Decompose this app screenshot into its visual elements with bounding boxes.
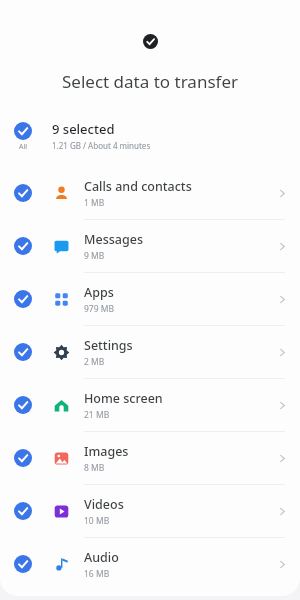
staticText: Audio [84, 549, 119, 566]
staticText: Images [84, 443, 129, 460]
button[interactable]: Settings [0, 326, 300, 378]
staticText: 8 MB [84, 462, 105, 474]
staticText: Select data to transfer [0, 70, 300, 93]
staticText: Settings [84, 337, 133, 354]
staticText: Messages [84, 231, 143, 248]
button[interactable]: Videos [0, 485, 300, 537]
button[interactable]: Apps [0, 273, 300, 325]
staticText: Videos [84, 496, 124, 513]
staticText: 21 MB [84, 409, 110, 421]
button[interactable]: All [0, 119, 300, 161]
staticText: 16 MB [84, 568, 110, 580]
staticText: 979 MB [84, 303, 115, 315]
staticText: Home screen [84, 390, 163, 407]
button[interactable]: Images [0, 432, 300, 484]
button[interactable]: Home screen [0, 379, 300, 431]
button[interactable]: Audio [0, 538, 300, 590]
staticText: Apps [84, 284, 114, 301]
staticText: 10 MB [84, 515, 110, 527]
staticText: 2 MB [84, 356, 105, 368]
staticText: 1.21 GB / About 4 minutes [52, 140, 151, 151]
button[interactable]: Calls and contacts [0, 167, 300, 219]
button[interactable]: Messages [0, 220, 300, 272]
staticText: 9 selected [52, 120, 115, 138]
staticText: 1 MB [84, 197, 105, 209]
staticText: All [19, 142, 28, 152]
staticText: 9 MB [84, 250, 105, 262]
staticText: Calls and contacts [84, 178, 192, 195]
